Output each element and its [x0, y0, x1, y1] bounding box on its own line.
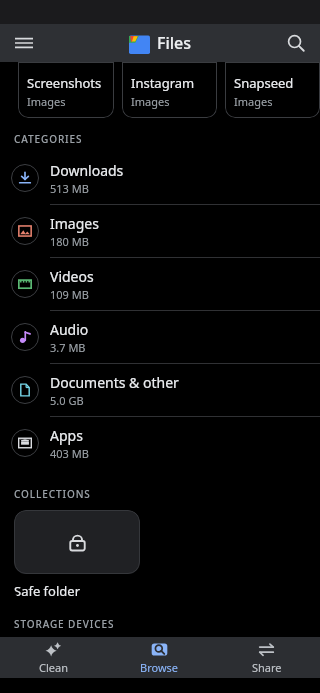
staticText: Snapseed [234, 74, 294, 92]
button[interactable]: Apps [0, 417, 320, 469]
staticText: Files [157, 32, 192, 54]
staticText: Videos [50, 267, 94, 286]
staticText: 5.0 GB [50, 393, 84, 408]
staticText: Images [131, 94, 170, 109]
button[interactable]: Downloads [0, 152, 320, 205]
button[interactable]: Documents & other [0, 364, 320, 417]
staticText: 513 MB [50, 181, 89, 196]
button[interactable]: Audio [0, 311, 320, 364]
button[interactable]: Share [213, 637, 320, 678]
button[interactable]: Videos [0, 258, 320, 311]
button[interactable]: Browse [106, 637, 213, 678]
button[interactable]: Clean [0, 637, 106, 678]
staticText: Apps [50, 426, 83, 445]
button[interactable]: Instagram [122, 62, 217, 118]
button[interactable]: Images [0, 205, 320, 258]
staticText: Downloads [50, 161, 124, 180]
staticText: STORAGE DEVICES [14, 617, 115, 631]
staticText: Images [50, 214, 99, 233]
button[interactable]: Search [278, 25, 314, 61]
staticText: 3.7 MB [50, 340, 86, 355]
staticText: COLLECTIONS [14, 487, 91, 501]
staticText: Instagram [131, 74, 195, 92]
staticText: Clean [39, 660, 68, 675]
staticText: Images [27, 94, 66, 109]
button[interactable]: Screenshots [18, 62, 114, 118]
staticText: Safe folder [14, 582, 81, 600]
staticText: 180 MB [50, 234, 89, 249]
staticText: CATEGORIES [14, 132, 83, 146]
staticText: Share [252, 660, 282, 675]
staticText: 403 MB [50, 446, 89, 461]
staticText: Screenshots [27, 74, 102, 92]
staticText: Audio [50, 320, 89, 339]
staticText: 109 MB [50, 287, 89, 302]
button[interactable]: Safe folder [14, 510, 140, 600]
staticText: Images [234, 94, 273, 109]
staticText: Browse [140, 660, 179, 675]
button[interactable]: Snapseed [225, 62, 320, 118]
staticText: Documents & other [50, 373, 179, 392]
button[interactable]: Open navigation menu [6, 25, 42, 61]
